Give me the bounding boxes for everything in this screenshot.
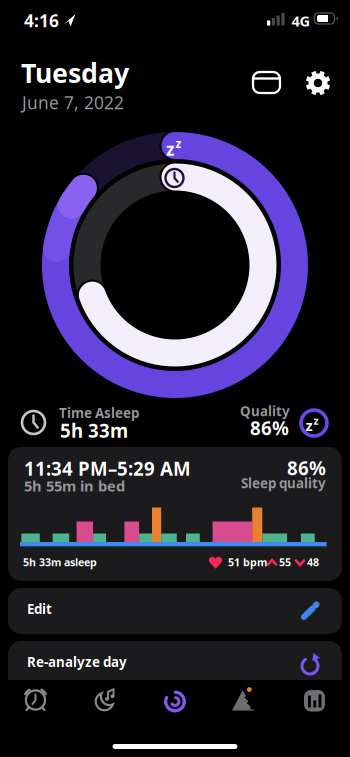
button[interactable]: Re-analyze day [8,641,342,693]
button[interactable] [70,680,140,726]
staticText: Quality [240,402,290,420]
button[interactable]: 11:34 PM–5:29 AM [8,447,342,581]
staticText: z [175,135,181,151]
staticText: 86% [287,456,326,480]
staticText: 48 [307,555,319,569]
staticText: Tuesday [21,55,129,90]
staticText: 5h 33m asleep [23,555,97,569]
button[interactable] [280,680,350,726]
staticText: 86% [250,416,289,440]
button[interactable] [210,680,280,726]
staticText: 55 [279,555,291,569]
button[interactable] [140,680,210,726]
staticText: June 7, 2022 [22,91,124,114]
staticText: 51 bpm [228,555,267,569]
staticText: Edit [27,600,52,618]
staticText: Sleep quality [241,474,326,492]
staticText: 4:16 [24,9,59,32]
staticText: 5h 55m in bed [24,476,125,495]
button[interactable] [304,69,332,97]
staticText: z [305,415,312,435]
staticText: Re-analyze day [27,653,127,671]
staticText: 5h 33m [60,418,128,443]
staticText: Time Asleep [59,404,139,422]
button[interactable] [0,680,70,726]
staticText: z [313,413,318,428]
button[interactable] [250,69,284,97]
staticText: 11:34 PM–5:29 AM [24,456,191,481]
staticText: 4G [291,11,310,30]
staticText: z [166,137,175,160]
button[interactable]: Edit [8,588,342,634]
